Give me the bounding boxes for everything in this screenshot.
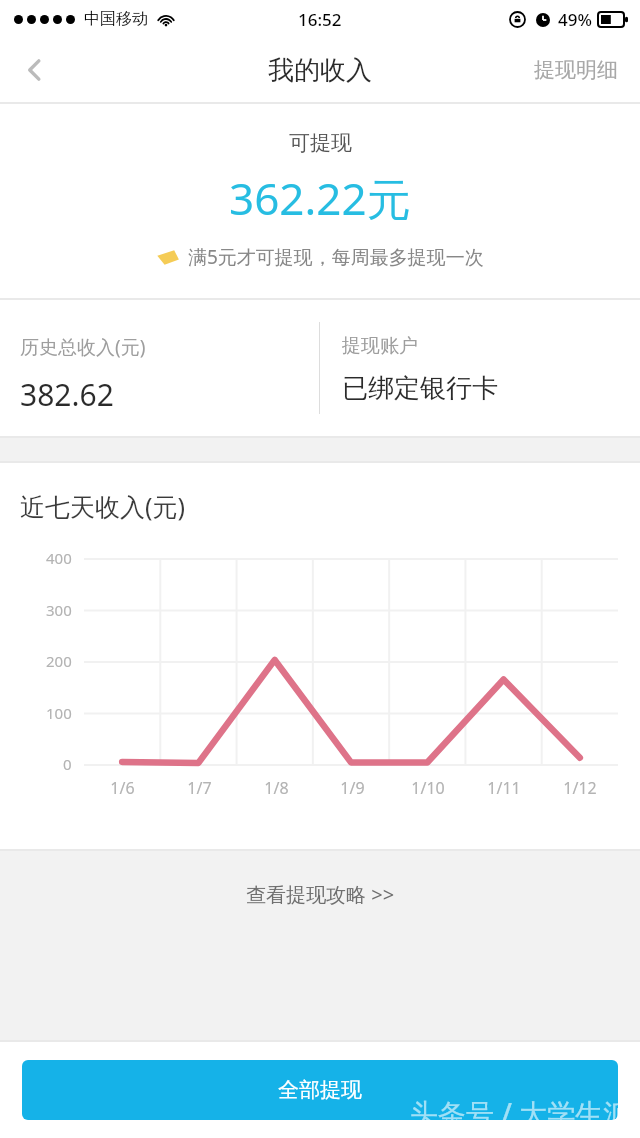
staticText: 200	[46, 651, 72, 671]
staticText: 我的收入	[268, 54, 372, 87]
staticText: 全部提现	[278, 1077, 362, 1103]
staticText: 49%	[558, 8, 592, 31]
staticText: 1/6	[110, 777, 135, 799]
staticText: 1/12	[563, 777, 597, 799]
staticText: 1/8	[264, 777, 289, 799]
staticText: 提现账户	[342, 334, 418, 358]
button[interactable]: 全部提现	[22, 1060, 618, 1120]
staticText: 已绑定银行卡	[342, 372, 498, 405]
staticText: 400	[46, 548, 72, 568]
staticText: 300	[46, 600, 72, 620]
staticText: 历史总收入(元)	[20, 334, 146, 360]
staticText: 1/9	[340, 777, 365, 799]
staticText: 16:52	[298, 8, 342, 31]
staticText: 1/10	[411, 777, 445, 799]
staticText: 0	[63, 754, 72, 774]
button[interactable]: 查看提现攻略 >>	[222, 873, 419, 916]
staticText: 满5元才可提现，每周最多提现一次	[188, 244, 484, 270]
staticText: 近七天收入(元)	[20, 489, 186, 523]
staticText: 100	[46, 703, 72, 723]
button[interactable]: 提现明细	[512, 38, 640, 102]
button[interactable]: 历史总收入(元)	[0, 300, 319, 436]
button[interactable]: Back	[0, 38, 70, 102]
button[interactable]: 提现账户	[320, 300, 640, 436]
staticText: 中国移动	[84, 9, 148, 29]
staticText: 1/11	[487, 777, 521, 799]
staticText: 头条号 / 大学生派	[410, 1094, 632, 1132]
staticText: 提现明细	[534, 57, 618, 83]
staticText: 362.22元	[229, 168, 411, 228]
staticText: 382.62	[20, 374, 114, 415]
staticText: 1/7	[187, 777, 212, 799]
staticText: 可提现	[289, 130, 352, 156]
staticText: 查看提现攻略 >>	[246, 881, 395, 908]
